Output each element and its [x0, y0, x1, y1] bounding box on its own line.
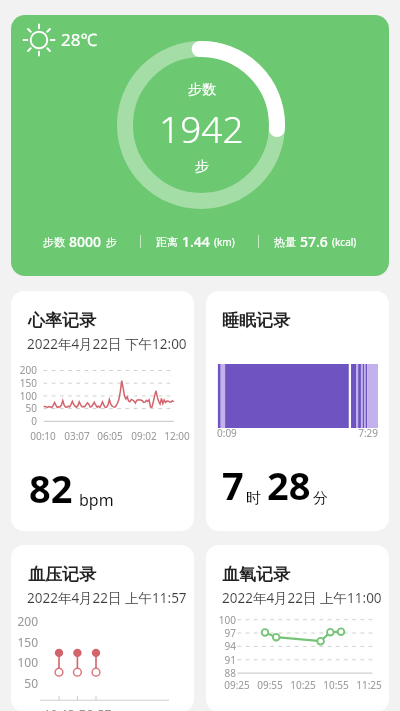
- staticText: 步数: [43, 235, 65, 249]
- staticText: 距离: [156, 235, 178, 249]
- staticText: 57.6: [300, 232, 328, 251]
- staticText: 200: [11, 363, 37, 377]
- staticText: 7: [222, 459, 244, 511]
- staticText: 2022年4月22日 下午12:00: [27, 335, 187, 353]
- staticText: 7:29: [338, 426, 378, 440]
- staticText: 1942: [159, 103, 244, 153]
- staticText: 28℃: [61, 28, 98, 51]
- staticText: 82: [29, 462, 73, 514]
- staticText: (kcal): [332, 235, 357, 249]
- staticText: 10:55: [311, 678, 361, 692]
- button[interactable]: 睡眠记录: [206, 291, 389, 531]
- staticText: bpm: [79, 489, 114, 511]
- staticText: 时: [246, 489, 261, 508]
- staticText: 28: [267, 459, 311, 511]
- staticText: 热量: [274, 235, 296, 249]
- staticText: 11:57: [71, 706, 121, 711]
- staticText: 50: [11, 401, 37, 415]
- button[interactable]: 血压记录: [11, 545, 194, 711]
- staticText: 150: [11, 634, 38, 650]
- staticText: 97: [206, 626, 236, 640]
- staticText: 心率记录: [28, 310, 96, 331]
- staticText: 100: [11, 654, 38, 670]
- staticText: 200: [11, 613, 38, 629]
- staticText: (km): [214, 235, 235, 249]
- staticText: 11:56: [52, 706, 102, 711]
- staticText: 100: [206, 613, 236, 627]
- staticText: 100: [11, 389, 37, 403]
- staticText: 1.44: [182, 232, 210, 251]
- staticText: 09:55: [245, 678, 295, 692]
- staticText: 09:02: [119, 429, 169, 443]
- button[interactable]: 心率记录: [11, 291, 194, 531]
- staticText: 12:00: [152, 429, 194, 443]
- staticText: 血氧记录: [222, 564, 290, 585]
- staticText: 09:25: [212, 678, 262, 692]
- staticText: 88: [206, 666, 236, 680]
- staticText: 0:09: [217, 426, 237, 440]
- staticText: 2022年4月22日 上午11:57: [27, 589, 187, 607]
- staticText: 94: [206, 639, 236, 653]
- staticText: 睡眠记录: [222, 310, 290, 331]
- staticText: 03:07: [52, 429, 102, 443]
- staticText: 2022年4月22日 上午11:00: [222, 589, 382, 607]
- button[interactable]: 血氧记录: [206, 545, 389, 711]
- staticText: 150: [11, 376, 37, 390]
- staticText: 11:25: [344, 678, 389, 692]
- staticText: 8000: [69, 232, 102, 251]
- staticText: 0: [11, 414, 37, 428]
- staticText: 06:05: [85, 429, 135, 443]
- staticText: 10:25: [278, 678, 328, 692]
- staticText: 50: [11, 675, 38, 691]
- staticText: 91: [206, 653, 236, 667]
- button[interactable]: Weather: [11, 15, 389, 276]
- staticText: 分: [313, 489, 328, 508]
- staticText: 血压记录: [28, 564, 96, 585]
- staticText: 步: [195, 158, 209, 176]
- other: Weather: [23, 24, 55, 56]
- staticText: 步: [106, 235, 117, 249]
- staticText: 步数: [188, 81, 216, 99]
- staticText: 00:10: [18, 429, 68, 443]
- staticText: 10:43: [34, 706, 84, 711]
